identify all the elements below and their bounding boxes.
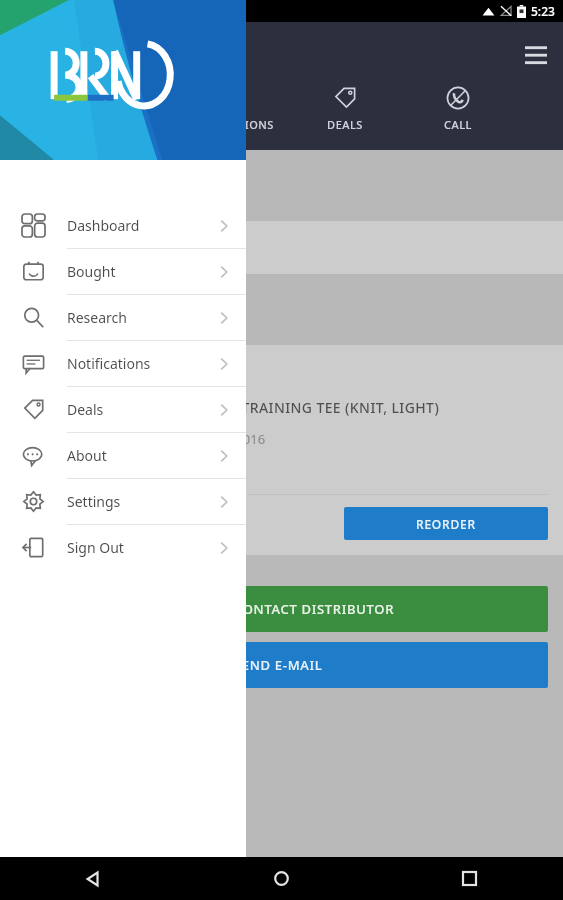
staticText: DEALS [327,117,363,132]
staticText: SEND E-MAIL [234,656,323,674]
button[interactable]: Back [0,857,187,900]
button[interactable]: Notifications [0,341,246,386]
button[interactable]: CONTACT DISTRIBUTOR [216,586,548,632]
staticText: Notifications [67,354,151,373]
staticText: About [67,446,107,465]
button[interactable]: Settings [0,479,246,524]
button[interactable]: Open navigation menu [516,32,556,72]
staticText: Deals [67,400,104,419]
staticText: Sign Out [67,538,124,557]
button[interactable]: Research [0,295,246,340]
button[interactable]: DEALS [288,80,401,142]
staticText: Research [67,308,127,327]
staticText: CALL [444,117,472,132]
button[interactable]: About [0,433,246,478]
staticText: 5:23 [531,3,555,19]
button[interactable]: CALL [401,80,514,142]
button[interactable]: REORDER [344,507,548,540]
button[interactable]: NOTIFICATIONS [170,80,288,142]
staticText: Settings [67,492,121,511]
staticText: Dashboard [67,216,140,235]
staticText: NOTIFICATIONS [184,117,274,132]
button[interactable]: SEND E-MAIL [216,642,548,688]
staticText: Bought [67,262,116,281]
button[interactable]: Recent apps [375,857,563,900]
staticText: REORDER [416,516,476,532]
button[interactable]: Deals [0,387,246,432]
staticText: 10/14/2016 [196,430,266,448]
button[interactable]: Dashboard [0,203,246,248]
button[interactable]: Sign Out [0,525,246,570]
button[interactable]: Home [187,857,375,900]
button[interactable]: Bought [0,249,246,294]
staticText: ACTIVE TRAINING TEE (KNIT, LIGHT) [188,398,440,417]
staticText: CONTACT DISTRIBUTOR [234,600,395,618]
